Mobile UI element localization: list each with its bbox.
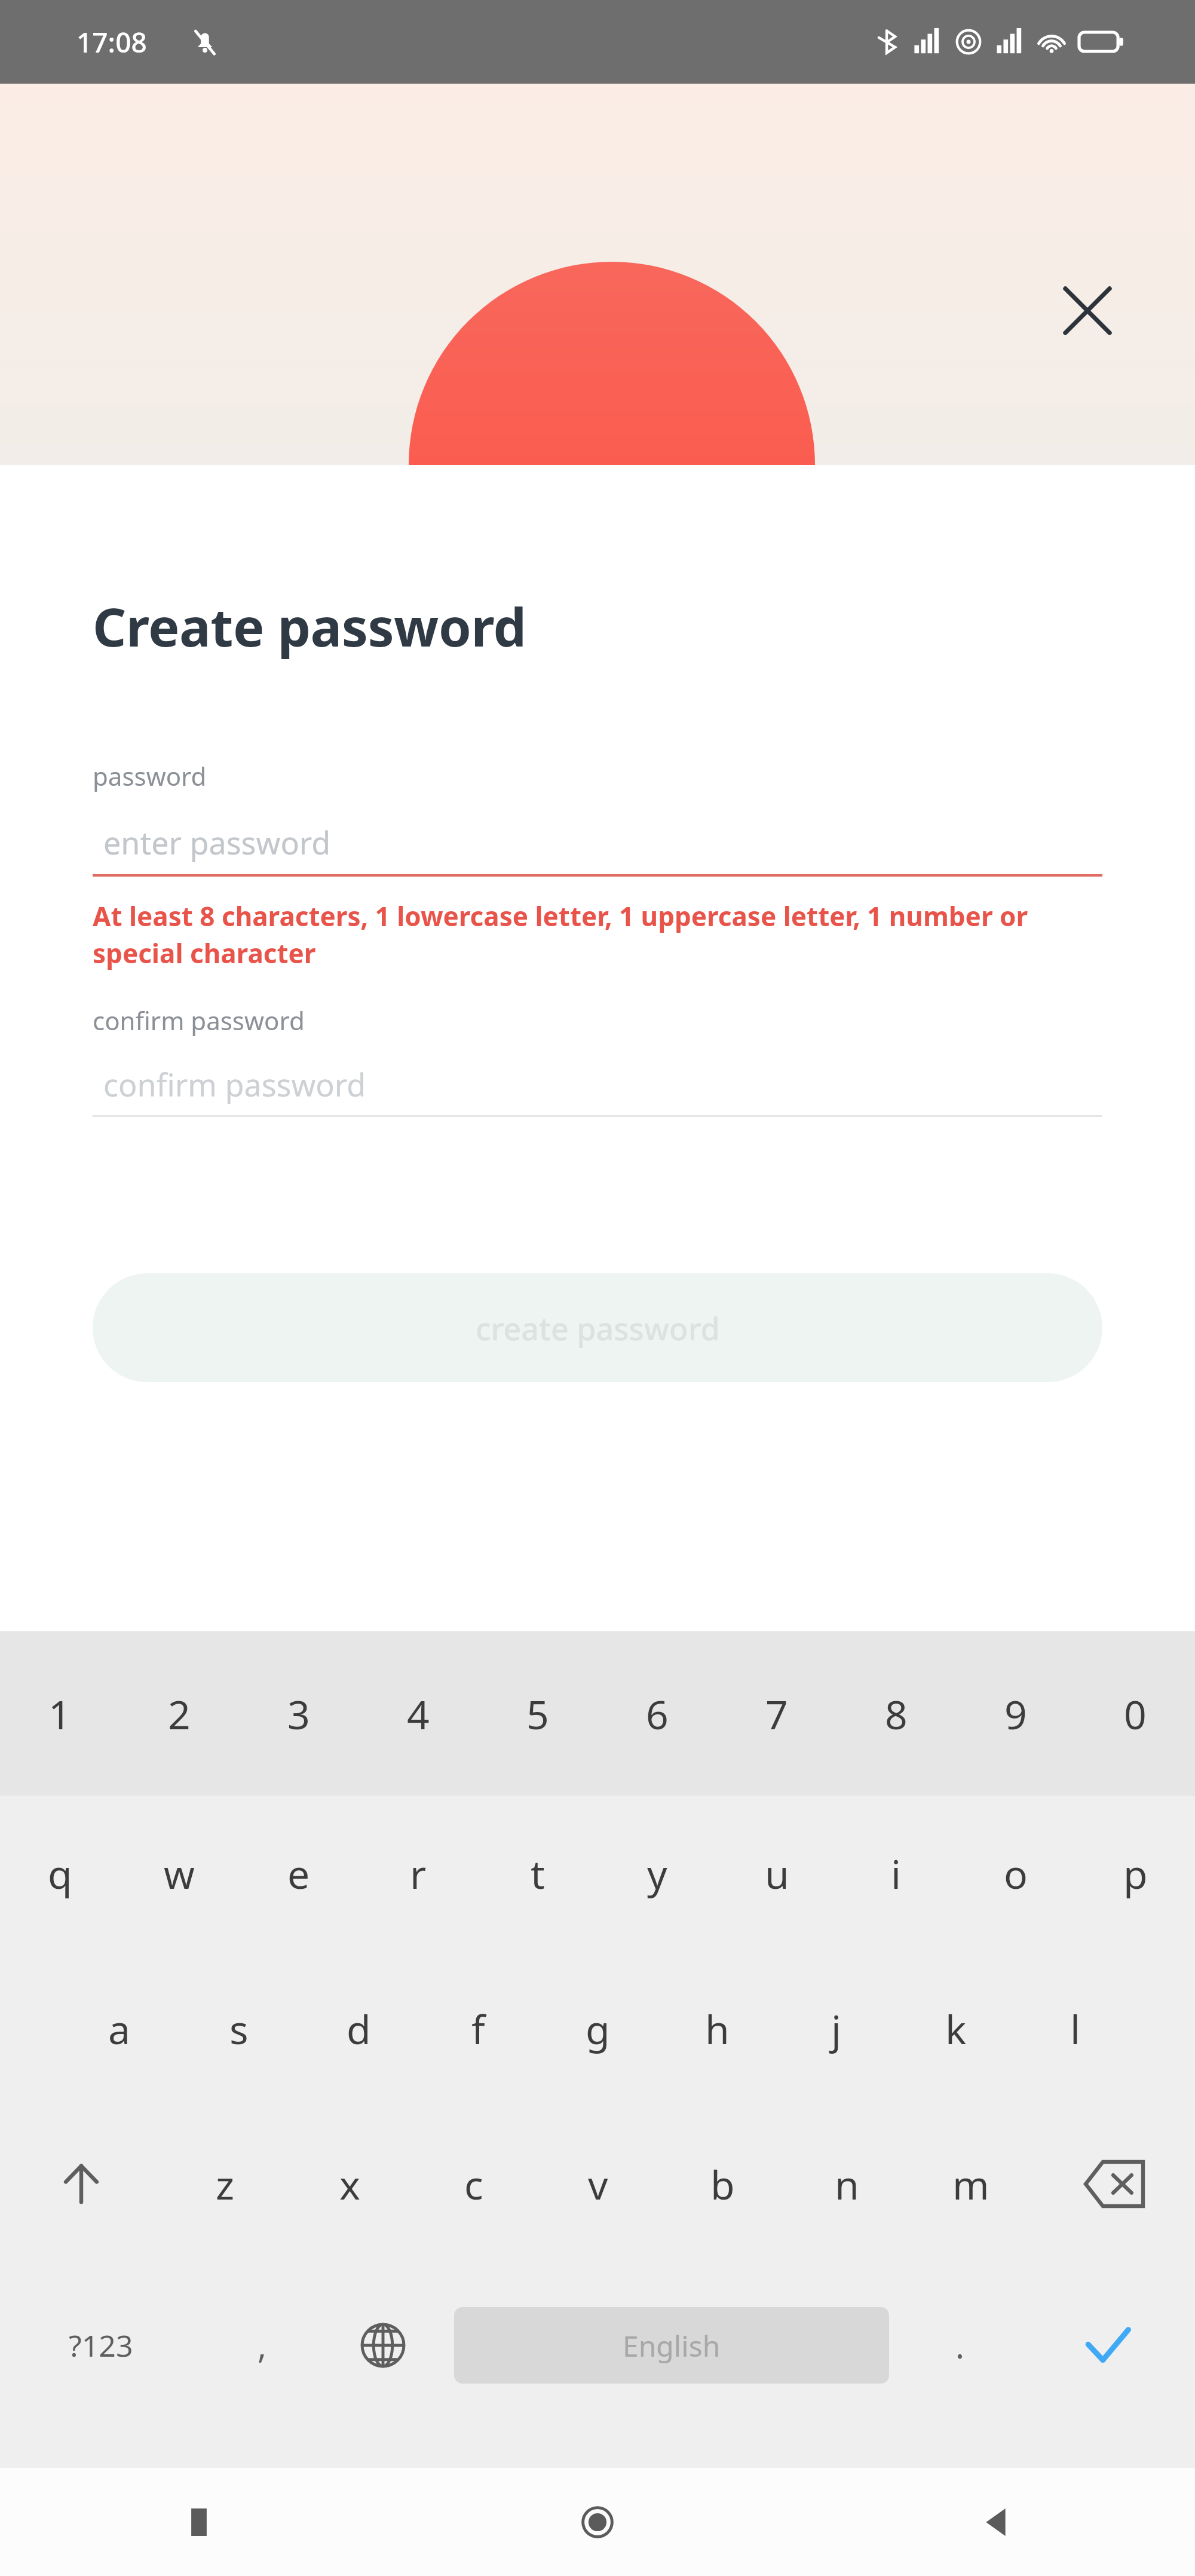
button[interactable]: q (0, 1796, 119, 1951)
staticText: 2 (168, 1687, 191, 1741)
button[interactable]: z (163, 2106, 287, 2262)
staticText: j (831, 2002, 842, 2056)
staticText: At least 8 characters, 1 lowercase lette… (93, 898, 1102, 971)
button[interactable]: k (896, 1951, 1016, 2106)
staticText: e (287, 1846, 310, 1900)
staticText: 9 (1004, 1687, 1027, 1741)
button[interactable]: g (538, 1951, 657, 2106)
staticText: confirm password (103, 1063, 366, 1105)
button[interactable]: m (909, 2106, 1033, 2262)
button[interactable]: d (299, 1951, 418, 2106)
button[interactable]: x (287, 2106, 412, 2262)
button[interactable]: l (1016, 1951, 1135, 2106)
staticText: 1 (48, 1687, 71, 1741)
staticText: d (347, 2002, 371, 2056)
button[interactable]: s (179, 1951, 299, 2106)
button[interactable]: h (657, 1951, 777, 2106)
button[interactable]: 4 (358, 1631, 478, 1796)
button[interactable]: j (777, 1951, 896, 2106)
staticText: s (229, 2002, 249, 2056)
button[interactable]: i (836, 1796, 956, 1951)
staticText: confirm password (93, 1003, 305, 1037)
button[interactable]: Home (398, 2468, 796, 2576)
staticText: u (765, 1846, 789, 1900)
staticText: q (48, 1846, 72, 1900)
staticText: v (588, 2157, 608, 2211)
button[interactable]: English (454, 2307, 889, 2384)
staticText: b (710, 2157, 735, 2211)
button[interactable]: confirm password (93, 1053, 1102, 1115)
staticText: 3 (287, 1687, 310, 1741)
staticText: , (258, 2323, 267, 2368)
staticText: c (464, 2157, 483, 2211)
staticText: l (1070, 2002, 1081, 2056)
staticText: . (955, 2323, 965, 2368)
button[interactable]: ?123 (0, 2262, 202, 2429)
button[interactable]: . (900, 2262, 1021, 2429)
staticText: English (623, 2326, 721, 2365)
staticText: 7 (765, 1687, 788, 1741)
staticText: m (952, 2157, 989, 2211)
staticText: w (164, 1846, 195, 1900)
button[interactable]: 0 (1075, 1631, 1195, 1796)
button[interactable]: e (239, 1796, 358, 1951)
button[interactable]: 2 (119, 1631, 239, 1796)
staticText: ?123 (69, 2325, 133, 2366)
button[interactable]: p (1075, 1796, 1195, 1951)
button[interactable]: 7 (717, 1631, 836, 1796)
button[interactable]: Enter (1021, 2262, 1195, 2429)
staticText: 4 (407, 1687, 430, 1741)
button[interactable]: t (478, 1796, 597, 1951)
button[interactable]: Change language (323, 2262, 443, 2429)
staticText: a (108, 2002, 131, 2056)
staticText: n (835, 2157, 859, 2211)
staticText: r (410, 1846, 427, 1900)
button[interactable]: r (358, 1796, 478, 1951)
button[interactable]: Back (796, 2468, 1195, 2576)
staticText: o (1004, 1846, 1028, 1900)
staticText: 6 (646, 1687, 669, 1741)
staticText: 8 (885, 1687, 908, 1741)
staticText: password (93, 759, 207, 793)
button[interactable]: f (418, 1951, 538, 2106)
button[interactable]: 8 (836, 1631, 956, 1796)
staticText: t (531, 1846, 545, 1900)
button[interactable]: o (956, 1796, 1075, 1951)
button[interactable]: 3 (239, 1631, 358, 1796)
button[interactable]: n (785, 2106, 909, 2262)
button[interactable]: 9 (956, 1631, 1075, 1796)
staticText: create password (476, 1307, 720, 1349)
button[interactable]: 1 (0, 1631, 119, 1796)
button[interactable]: Shift (0, 2106, 163, 2262)
button[interactable]: Recent apps (0, 2468, 398, 2576)
staticText: 5 (526, 1687, 549, 1741)
button[interactable]: 5 (478, 1631, 597, 1796)
staticText: Create password (93, 590, 526, 662)
button[interactable]: enter password (93, 810, 1102, 874)
button[interactable]: , (202, 2262, 323, 2429)
staticText: i (891, 1846, 902, 1900)
staticText: 17:08 (76, 23, 147, 61)
staticText: p (1123, 1846, 1148, 1900)
staticText: enter password (103, 821, 331, 863)
staticText: x (339, 2157, 360, 2211)
staticText: 0 (1124, 1687, 1147, 1741)
staticText: y (647, 1846, 667, 1900)
button[interactable]: v (536, 2106, 660, 2262)
staticText: h (705, 2002, 730, 2056)
button[interactable]: create password (93, 1273, 1102, 1382)
button[interactable]: a (60, 1951, 179, 2106)
staticText: f (471, 2002, 485, 2056)
button[interactable]: c (412, 2106, 536, 2262)
staticText: g (586, 2002, 610, 2056)
button[interactable]: Close (1052, 275, 1123, 347)
button[interactable]: b (660, 2106, 785, 2262)
button[interactable]: Backspace (1033, 2106, 1195, 2262)
button[interactable]: w (119, 1796, 239, 1951)
staticText: z (216, 2157, 235, 2211)
staticText: k (945, 2002, 967, 2056)
button[interactable]: 6 (597, 1631, 717, 1796)
button[interactable]: u (717, 1796, 836, 1951)
button[interactable]: y (597, 1796, 717, 1951)
